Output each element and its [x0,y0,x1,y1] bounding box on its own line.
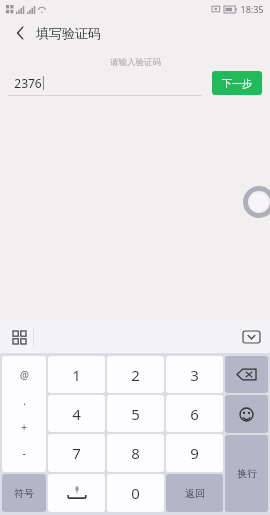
staticText: 3 [190,365,199,385]
button[interactable]: 符号 [2,474,46,512]
button[interactable]: 2 [107,356,164,393]
button[interactable]: Backspace [225,356,268,393]
button[interactable]: Back [10,23,30,43]
staticText: 下一步 [222,77,252,90]
button[interactable]: 6 [166,395,223,432]
staticText: 返回 [185,487,205,500]
staticText: - [22,446,26,460]
staticText: 4 [72,404,81,424]
staticText: + [21,420,27,434]
staticText: 2376 [14,75,42,91]
button[interactable]: @ [2,356,46,472]
button[interactable]: 5 [107,395,164,432]
button[interactable]: Keyboard menu [6,324,32,350]
staticText: 符号 [14,487,34,500]
staticText: 请输入验证码 [110,57,161,68]
button[interactable]: 返回 [166,474,223,512]
button[interactable]: 9 [166,434,223,472]
staticText: . [23,394,26,408]
staticText: 填写验证码 [36,25,101,41]
button[interactable]: Assistive touch [243,186,270,218]
button[interactable]: 8 [107,434,164,472]
button[interactable]: 2376 [8,70,202,96]
staticText: 2 [131,365,140,385]
staticText: 5 [131,404,140,424]
staticText: 0 [131,483,140,503]
button[interactable]: Emoji [225,395,268,433]
button[interactable]: 0 [107,474,164,512]
staticText: 换行 [237,467,257,480]
button[interactable]: 3 [166,356,223,393]
staticText: 18:35 [240,3,264,15]
button[interactable]: 换行 [225,435,268,512]
button[interactable]: Hide keyboard [238,324,264,350]
staticText: @ [20,368,29,382]
button[interactable]: 下一步 [212,71,262,95]
button[interactable] [48,474,105,512]
staticText: 8 [131,443,140,463]
staticText: 7 [72,443,81,463]
button[interactable]: 7 [48,434,105,472]
button[interactable]: 1 [48,356,105,393]
staticText: 1 [72,365,81,385]
staticText: 9 [190,443,199,463]
staticText: 6 [190,404,199,424]
button[interactable]: 4 [48,395,105,432]
